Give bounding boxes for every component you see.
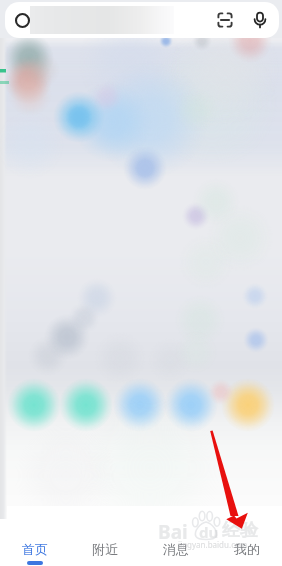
staticText: 消息 (163, 541, 189, 557)
staticText: Bai (158, 519, 188, 545)
button[interactable]: Voice search (250, 10, 270, 30)
button[interactable]: 首页 (0, 519, 70, 566)
staticText: 附近 (92, 541, 118, 557)
staticText: 经验 (222, 519, 258, 542)
staticText: 我的 (234, 541, 260, 557)
button[interactable]: Scan code (215, 10, 235, 30)
staticText: jingyan.baidu.com (178, 539, 248, 550)
button[interactable]: 我的 (211, 519, 282, 566)
staticText: du (199, 522, 219, 542)
staticText: 首页 (22, 541, 48, 557)
button[interactable]: 附近 (70, 519, 140, 566)
button[interactable]: 消息 (140, 519, 211, 566)
